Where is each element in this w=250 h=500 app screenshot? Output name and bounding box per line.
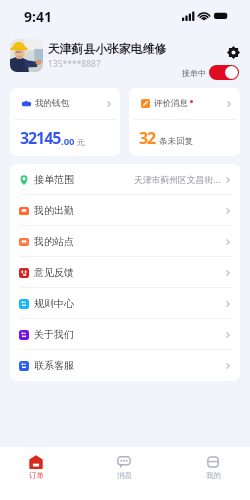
button[interactable]: 订单 (16, 447, 56, 500)
button[interactable]: 我的出勤 (10, 195, 240, 226)
button[interactable]: 接单范围 (10, 164, 240, 195)
button[interactable]: 消息 (104, 447, 144, 500)
staticText: 条未回复 (159, 136, 193, 147)
button[interactable]: 意见反馈 (10, 257, 240, 288)
staticText: 评价消息 (154, 98, 188, 109)
staticText: 规则中心 (34, 297, 74, 310)
staticText: 我的站点 (34, 235, 74, 248)
staticText: 接单中 (182, 68, 206, 78)
staticText: .00 (61, 135, 75, 148)
button[interactable]: 我的站点 (10, 226, 240, 257)
staticText: 我的出勤 (34, 204, 74, 217)
button[interactable]: Settings (226, 45, 240, 59)
button[interactable]: 我的 (193, 447, 233, 500)
staticText: 32 (139, 127, 156, 149)
staticText: 消息 (117, 471, 132, 480)
staticText: 135****8887 (48, 58, 101, 70)
button[interactable]: Accepting orders toggle (209, 65, 239, 80)
button[interactable]: 关于我们 (10, 319, 240, 350)
staticText: 关于我们 (34, 328, 74, 341)
button[interactable]: 评价消息 (129, 88, 240, 156)
staticText: 接单范围 (34, 173, 74, 186)
staticText: 天津市蓟州区文昌街... (134, 174, 221, 186)
staticText: 32145 (20, 127, 61, 149)
button[interactable]: 规则中心 (10, 288, 240, 319)
staticText: 9:41 (24, 7, 52, 26)
staticText: 元 (77, 137, 85, 147)
staticText: 我的钱包 (35, 98, 69, 109)
button[interactable]: 我的钱包 (10, 88, 120, 156)
button[interactable]: 联系客服 (10, 350, 240, 381)
staticText: 订单 (29, 471, 44, 480)
staticText: 联系客服 (34, 359, 74, 372)
staticText: 意见反馈 (34, 266, 74, 279)
staticText: 我的 (206, 471, 221, 480)
staticText: 天津蓟县小张家电维修 (48, 42, 166, 57)
